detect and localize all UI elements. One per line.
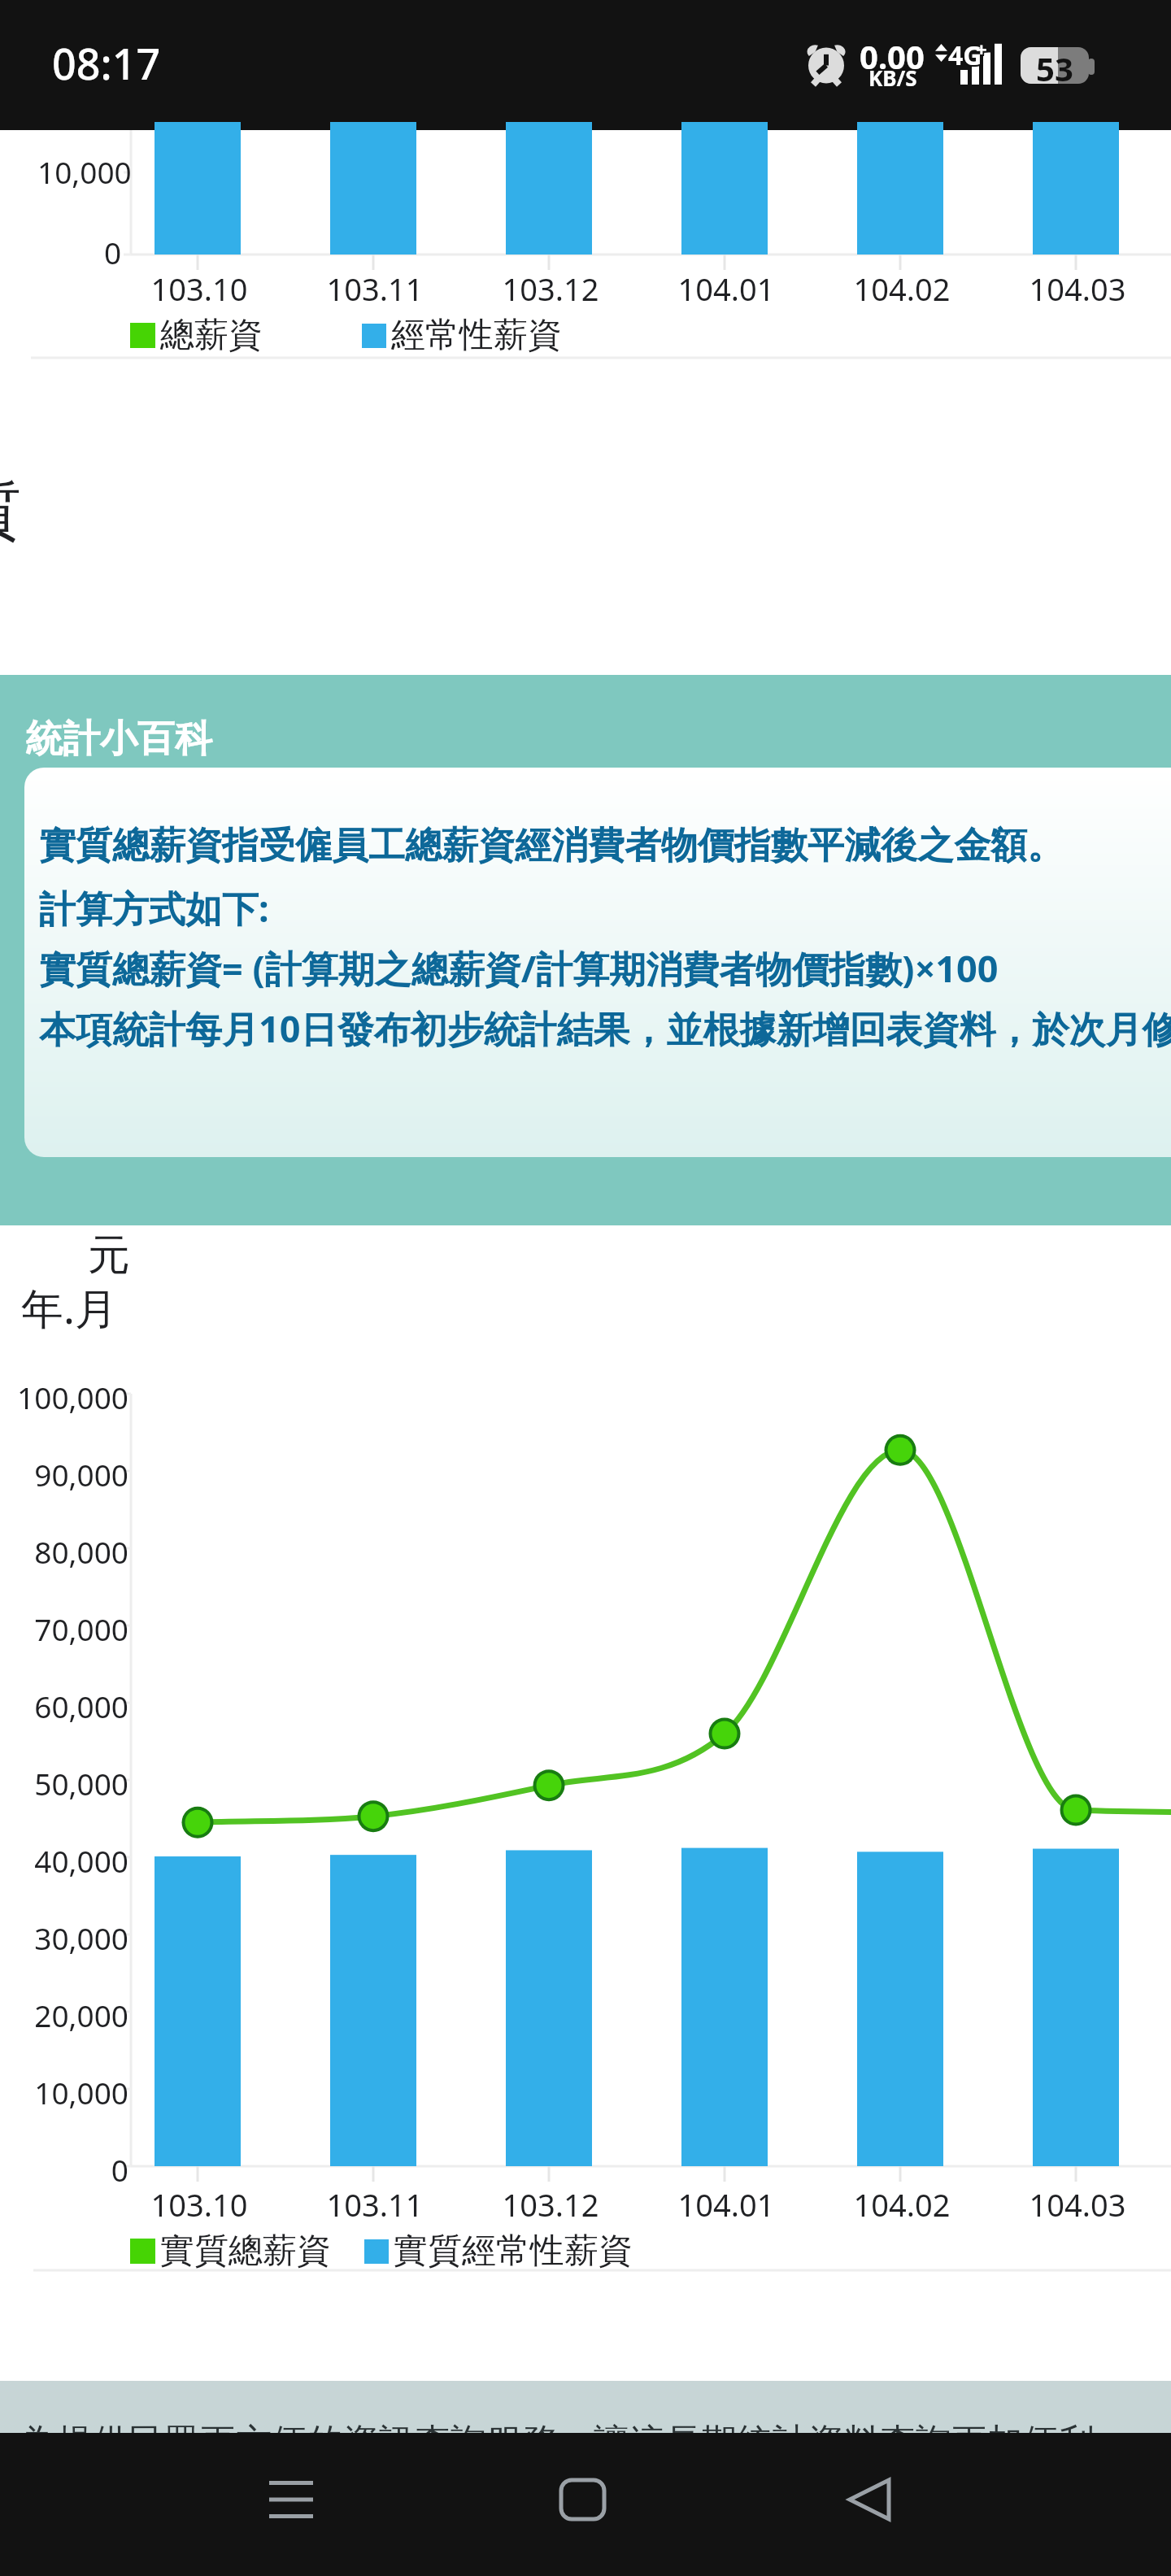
staticText: 4G (950, 39, 984, 75)
staticText: 元 (88, 1229, 130, 1282)
staticText: + (974, 34, 986, 61)
staticText: 08:17 (52, 34, 161, 92)
staticText: 20,000 (0, 1995, 128, 2035)
staticText: 70,000 (0, 1608, 128, 1649)
staticText: 4G (947, 37, 981, 73)
button[interactable]: 實質總薪資 (130, 2230, 331, 2273)
staticText: 104.01 (642, 2183, 810, 2226)
staticText: 本項統計每月10日發布初步統計結果，並根據新增回表資料，於次月修 (39, 1003, 1171, 1053)
button[interactable]: 統計小百科 (0, 675, 1171, 1225)
staticText: 104.03 (994, 268, 1161, 310)
button[interactable]: 為提供民眾更方便的資訊查詢服務，讓這長期統計資料查詢更加便利 (0, 2381, 1171, 2433)
staticText: 為提供民眾更方便的資訊查詢服務，讓這長期統計資料查詢更加便利 (21, 2420, 1095, 2465)
staticText: 質 (0, 472, 21, 551)
button[interactable]: 總薪資 (130, 314, 263, 357)
staticText: 30,000 (0, 1917, 128, 1958)
staticText: 經常性薪資 (391, 314, 562, 357)
staticText: 年.月 (21, 1278, 117, 1336)
staticText: + (977, 34, 989, 61)
button[interactable]: 實質經常性薪資 (364, 2230, 633, 2273)
staticText: 實質總薪資= (計算期之總薪資/計算期消費者物價指數)×100 (39, 943, 999, 993)
staticText: 100,000 (0, 1377, 128, 1417)
staticText: 104.02 (818, 2183, 986, 2226)
staticText: 4G (948, 37, 982, 73)
button[interactable]: Home (533, 2451, 631, 2548)
staticText: 4G (947, 36, 981, 72)
staticText: 60,000 (0, 1686, 128, 1726)
staticText: 104.03 (994, 2183, 1161, 2226)
staticText: 80,000 (0, 1531, 128, 1572)
staticText: + (974, 37, 986, 64)
staticText: 10,000 (0, 2072, 128, 2113)
staticText: 實質總薪資 (160, 2230, 331, 2273)
staticText: KB/S (868, 63, 917, 92)
staticText: 53 (1036, 47, 1073, 83)
button[interactable]: Back (821, 2451, 918, 2548)
staticText: 90,000 (0, 1454, 128, 1495)
staticText: 0 (0, 2149, 128, 2190)
staticText: 4G (948, 39, 982, 75)
staticText: 103.10 (115, 2183, 283, 2226)
staticText: 4G (950, 37, 984, 73)
button[interactable]: 經常性薪資 (362, 314, 562, 357)
staticText: 實質經常性薪資 (394, 2230, 633, 2273)
staticText: 計算方式如下: (39, 883, 269, 933)
staticText: + (976, 37, 987, 64)
staticText: 103.12 (467, 268, 634, 310)
staticText: 104.01 (642, 268, 810, 310)
staticText: 實質總薪資指受僱員工總薪資經消費者物價指數平減後之金額。 (39, 823, 1064, 869)
staticText: + (976, 34, 987, 61)
staticText: + (976, 36, 987, 63)
button[interactable]: Recents (242, 2451, 340, 2548)
staticText: + (977, 37, 989, 64)
staticText: 4G (950, 36, 984, 72)
staticText: 0.00 (860, 34, 925, 78)
staticText: 總薪資 (160, 314, 263, 357)
staticText: 40,000 (0, 1840, 128, 1881)
staticText: 103.10 (115, 268, 283, 310)
staticText: + (976, 36, 987, 63)
staticText: 0 (104, 232, 122, 272)
staticText: 103.11 (291, 2183, 459, 2226)
staticText: 104.02 (818, 268, 986, 310)
staticText: 103.11 (291, 268, 459, 310)
staticText: 10,000 (37, 151, 132, 192)
staticText: 4G (947, 39, 981, 75)
staticText: 50,000 (0, 1763, 128, 1804)
staticText: + (977, 36, 989, 63)
staticText: 103.12 (467, 2183, 634, 2226)
staticText: 統計小百科 (25, 716, 212, 763)
staticText: 4G (948, 36, 982, 72)
staticText: + (974, 36, 986, 63)
staticText: 4G (948, 37, 982, 73)
